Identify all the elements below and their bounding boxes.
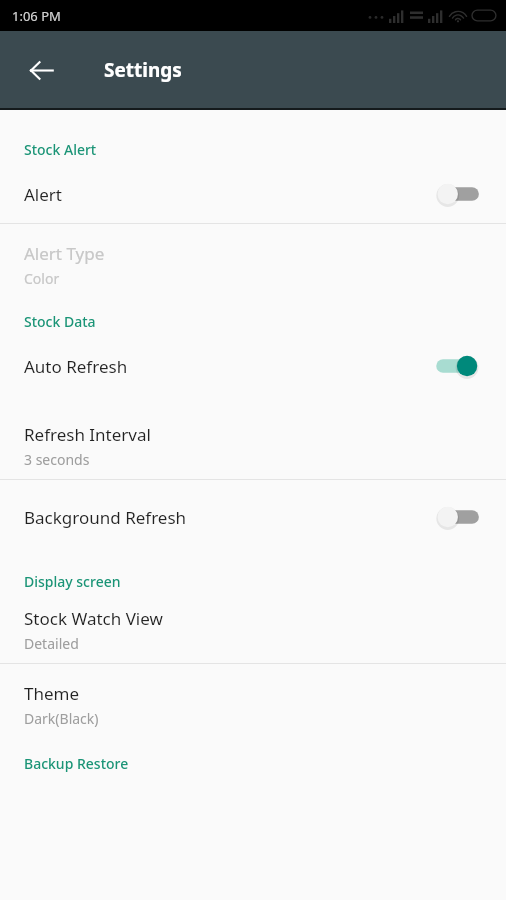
staticText: Refresh Interval [24,423,151,446]
button[interactable]: Stock Watch View [0,597,506,663]
button[interactable]: Alert [0,165,506,223]
button[interactable]: Toggle on [430,349,482,383]
button[interactable]: Alert Type [0,224,506,304]
staticText: 1:06 PM [12,7,61,25]
staticText: Detailed [24,634,79,653]
staticText: Backup Restore [24,754,129,773]
staticText: Settings [104,57,182,83]
staticText: Dark(Black) [24,709,99,728]
staticText: Stock Data [24,312,96,331]
staticText: Color [24,269,60,288]
staticText: Display screen [24,572,121,591]
staticText: Auto Refresh [24,355,430,378]
button[interactable]: Toggle off [430,177,482,211]
staticText: Theme [24,682,80,705]
button[interactable]: Toggle off [430,500,482,534]
button[interactable]: Back [17,46,65,94]
staticText: Alert Type [24,242,105,265]
staticText: Stock Watch View [24,607,163,630]
staticText: Stock Alert [24,140,97,159]
button[interactable]: Background Refresh [0,480,506,554]
staticText: 3 seconds [24,450,90,469]
button[interactable]: Auto Refresh [0,337,506,395]
button[interactable]: Theme [0,664,506,736]
staticText: Background Refresh [24,506,430,529]
button[interactable]: Refresh Interval [0,413,506,479]
staticText: Alert [24,183,430,206]
